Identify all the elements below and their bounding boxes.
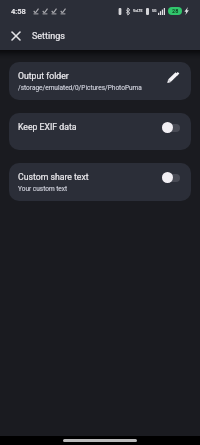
staticText: Output folder [18,71,69,81]
staticText: 5G [152,9,157,13]
button[interactable]: Toggle [162,172,180,183]
staticText: Custom share text [18,172,89,182]
staticText: 28 [172,8,179,14]
button[interactable]: Toggle [162,122,180,133]
staticText: VoLTE [133,9,143,13]
button[interactable]: Close [2,22,30,50]
staticText: 4:58 [11,7,26,16]
button[interactable]: Edit output folder [167,71,180,83]
button[interactable]: Custom share text [9,163,191,201]
staticText: Keep EXIF data [18,122,77,132]
staticText: /storage/emulated/0/Pictures/PhotoPuma [18,84,142,92]
button[interactable]: Keep EXIF data [9,113,191,150]
staticText: Your custom text [18,185,68,193]
staticText: Settings [32,31,65,42]
button[interactable]: Output folder [9,62,191,100]
